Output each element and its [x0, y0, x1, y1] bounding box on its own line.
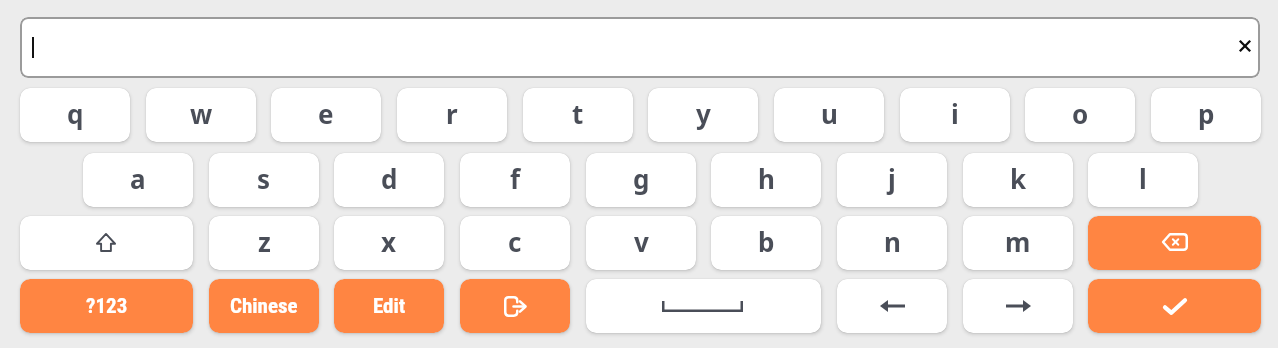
button[interactable]: q [20, 88, 130, 142]
button[interactable]: ?123 [20, 279, 193, 333]
button[interactable]: r [397, 88, 507, 142]
button[interactable]: v [586, 216, 696, 270]
button[interactable]: y [648, 88, 758, 142]
staticText: t [572, 96, 584, 131]
staticText: q [67, 96, 84, 131]
staticText: r [446, 96, 458, 131]
staticText: h [758, 161, 775, 196]
button[interactable]: z [209, 216, 319, 270]
button[interactable]: Cursor left [837, 279, 947, 333]
button[interactable]: Edit [334, 279, 444, 333]
button[interactable]: g [586, 153, 696, 207]
staticText: x [381, 224, 397, 259]
button[interactable]: n [837, 216, 947, 270]
button[interactable]: u [774, 88, 884, 142]
button[interactable]: Enter [1088, 279, 1261, 333]
staticText: i [951, 96, 959, 131]
staticText: f [510, 161, 521, 196]
button[interactable]: a [83, 153, 193, 207]
staticText: j [888, 161, 896, 196]
staticText: v [634, 224, 649, 259]
button[interactable]: m [963, 216, 1073, 270]
staticText: g [633, 161, 650, 196]
button[interactable]: t [523, 88, 633, 142]
button[interactable]: Shift [20, 216, 193, 270]
button[interactable]: b [711, 216, 821, 270]
button[interactable]: k [963, 153, 1073, 207]
staticText: w [190, 96, 213, 131]
button[interactable]: Hide keyboard [460, 279, 570, 333]
button[interactable]: x [334, 216, 444, 270]
button[interactable]: Chinese [209, 279, 319, 333]
staticText: l [1139, 161, 1147, 196]
button[interactable]: Cursor right [963, 279, 1073, 333]
button[interactable]: d [334, 153, 444, 207]
button[interactable]: f [460, 153, 570, 207]
staticText: b [758, 224, 775, 259]
button[interactable]: w [146, 88, 256, 142]
staticText: e [318, 96, 334, 131]
button[interactable]: i [900, 88, 1010, 142]
staticText: o [1072, 96, 1089, 131]
button[interactable]: Clear text [1227, 28, 1260, 64]
staticText: ?123 [86, 294, 128, 319]
staticText: c [508, 224, 522, 259]
button[interactable]: o [1025, 88, 1135, 142]
button[interactable]: j [837, 153, 947, 207]
staticText: Edit [373, 294, 406, 319]
button[interactable]: Backspace [1088, 216, 1261, 270]
staticText: a [130, 161, 146, 196]
staticText: k [1010, 161, 1027, 196]
staticText: s [257, 161, 271, 196]
button[interactable]: Clear text [20, 17, 1260, 78]
button[interactable]: c [460, 216, 570, 270]
button[interactable]: s [209, 153, 319, 207]
staticText: u [821, 96, 838, 131]
staticText: p [1198, 96, 1215, 131]
button[interactable]: p [1151, 88, 1261, 142]
button[interactable]: h [711, 153, 821, 207]
staticText: m [1005, 224, 1031, 259]
staticText: y [696, 96, 711, 131]
staticText: Chinese [230, 294, 298, 319]
button[interactable]: Space [586, 279, 821, 333]
button[interactable]: l [1088, 153, 1198, 207]
staticText: n [884, 224, 901, 259]
staticText: d [381, 161, 398, 196]
staticText: z [258, 224, 271, 259]
button[interactable]: e [271, 88, 381, 142]
